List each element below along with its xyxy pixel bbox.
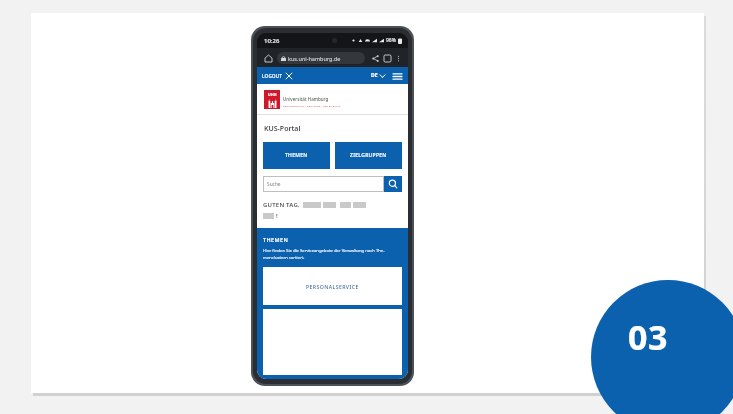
staticText: DER FORSCHUNG | DER LEHRE | DER BILDUNG <box>283 104 341 107</box>
button[interactable]: Share <box>369 52 381 64</box>
staticText: 03 <box>628 314 668 360</box>
button[interactable]: Menu <box>391 70 403 82</box>
button[interactable]: Tabs <box>381 52 393 64</box>
staticText: Hier finden Sie die Serviceangebote der … <box>263 248 385 260</box>
button[interactable]: Search <box>384 176 402 192</box>
staticText: GUTEN TAG, <box>263 201 300 209</box>
staticText: 10:26 <box>264 37 280 45</box>
staticText: THEMEN <box>263 236 289 243</box>
button[interactable]: More options <box>393 53 403 63</box>
staticText: ! <box>276 212 278 220</box>
button[interactable]: ZIELGRUPPEN <box>335 142 402 169</box>
staticText: kus.uni-hamburg.de <box>288 55 341 62</box>
button[interactable]: THEMEN <box>263 142 330 169</box>
button[interactable]: kus.uni-hamburg.de <box>277 52 365 64</box>
staticText: THEMEN <box>285 152 308 159</box>
button[interactable]: Home <box>262 52 274 64</box>
staticText: Suche <box>267 181 281 188</box>
staticText: DE <box>371 72 378 79</box>
staticText: 96% <box>386 37 396 44</box>
staticText: UHH <box>268 92 277 97</box>
staticText: Universität Hamburg <box>283 96 329 102</box>
staticText: LOGOUT <box>262 73 283 79</box>
staticText: PERSONALSERVICE <box>306 283 359 290</box>
button[interactable]: PERSONALSERVICE <box>263 267 402 305</box>
staticText: ZIELGRUPPEN <box>350 152 387 159</box>
staticText: KUS-Portal <box>264 124 301 134</box>
button[interactable]: LOGOUT <box>262 73 292 79</box>
button[interactable]: Suche <box>263 176 384 192</box>
button[interactable]: DE <box>371 72 385 79</box>
